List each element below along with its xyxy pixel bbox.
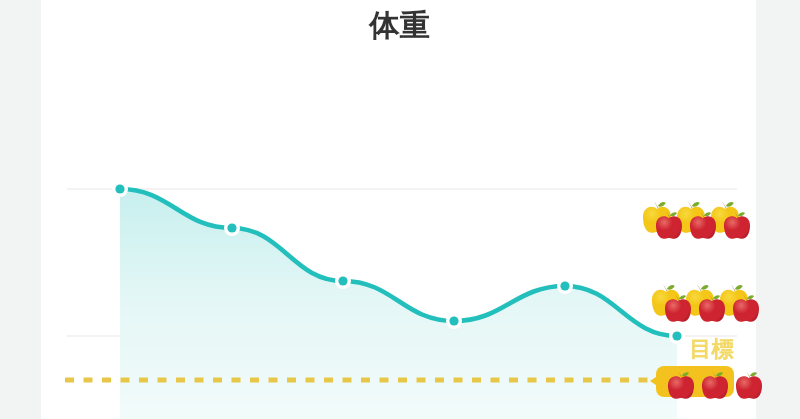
button[interactable]: Week 1 apple score: 3 of 3 xyxy=(653,203,753,241)
staticText: 体重 xyxy=(369,7,429,45)
button[interactable]: 目標 xyxy=(689,336,733,364)
button[interactable] xyxy=(0,0,800,419)
button[interactable]: Goal: 3 apples xyxy=(650,366,766,400)
button[interactable]: 体重 xyxy=(41,0,756,48)
button[interactable]: Week 2 apple score: 3 of 3 xyxy=(662,286,762,324)
staticText: 目標 xyxy=(689,336,733,364)
